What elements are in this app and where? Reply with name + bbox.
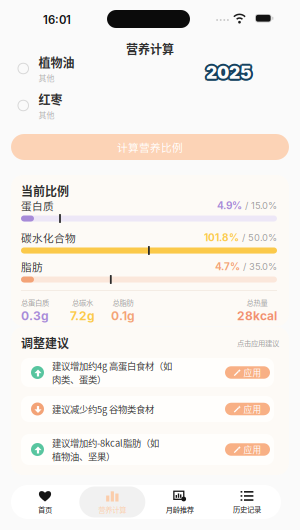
staticText: 植物油 [38, 53, 74, 71]
staticText: 营养计算 [98, 504, 126, 515]
button[interactable]: 历史记录 [214, 486, 280, 517]
staticText: 总碳水 [72, 297, 93, 308]
staticText: 2025 [205, 63, 251, 84]
staticText: 建议减少约5g 谷物类食材 [52, 402, 154, 416]
staticText: 总热量 [246, 297, 267, 308]
staticText: / 35.0% [240, 261, 277, 272]
staticText: 建议增加约-8kcal脂肪（如 植物油、坚果） [52, 436, 159, 463]
staticText: 2025 [204, 62, 250, 83]
button[interactable]: 首页 [12, 486, 78, 517]
button[interactable]: 营养计算 [79, 486, 145, 517]
staticText: 2025 [206, 64, 252, 85]
button[interactable]: 植物油 [0, 50, 300, 87]
staticText: 4.7% [215, 260, 240, 273]
staticText: 点击应用建议 [237, 337, 279, 348]
staticText: 建议增加约4g 高蛋白食材（如 肉类、蛋类） [52, 359, 172, 386]
staticText: 2025 [206, 63, 252, 84]
staticText: 2025 [206, 60, 252, 81]
button[interactable]: 计算营养比例 [11, 134, 289, 160]
staticText: 2025 [205, 62, 251, 83]
staticText: / 15.0% [242, 200, 277, 211]
staticText: 应用 [243, 443, 261, 456]
button[interactable]: 应用 [225, 403, 270, 415]
button[interactable]: 红枣 [0, 87, 300, 124]
staticText: / 50.0% [239, 232, 277, 243]
staticText: 计算营养比例 [117, 139, 183, 155]
staticText: 历史记录 [233, 504, 261, 514]
staticText: 0.3g [21, 309, 49, 323]
staticText: 调整建议 [21, 334, 69, 351]
staticText: 0.1g [111, 309, 135, 323]
staticText: 碳水化合物 [21, 230, 76, 245]
staticText: 4.9% [217, 199, 242, 212]
staticText: 2025 [207, 63, 253, 84]
staticText: 红枣 [38, 90, 62, 108]
staticText: 2025 [205, 61, 251, 82]
staticText: 2025 [207, 61, 253, 82]
staticText: 2025 [206, 61, 252, 82]
staticText: 总蛋白质 [21, 297, 49, 308]
staticText: 应用 [243, 403, 261, 415]
staticText: 28kcal [237, 309, 277, 323]
staticText: 脂肪 [21, 259, 43, 274]
staticText: 7.2g [70, 309, 95, 323]
staticText: 2025 [208, 62, 254, 83]
staticText: 16:01 [43, 13, 71, 27]
staticText: 总脂肪 [112, 297, 133, 308]
staticText: 蛋白质 [21, 198, 54, 213]
staticText: 首页 [38, 504, 52, 515]
staticText: 其他 [38, 109, 54, 120]
button[interactable]: 月龄推荐 [147, 486, 213, 517]
staticText: 营养计算 [126, 40, 174, 57]
button[interactable]: 应用 [225, 443, 270, 456]
staticText: 2025 [207, 62, 253, 83]
staticText: 101.8% [204, 231, 239, 244]
staticText: 应用 [243, 366, 261, 379]
staticText: 月龄推荐 [166, 504, 194, 515]
staticText: 2025 [206, 62, 252, 83]
button[interactable]: 应用 [225, 366, 270, 379]
staticText: 其他 [38, 72, 54, 83]
staticText: 当前比例 [21, 182, 69, 199]
